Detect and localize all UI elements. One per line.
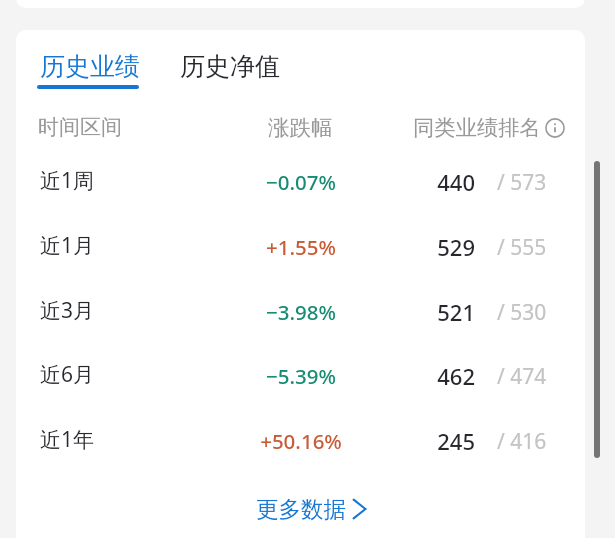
- staticText: 历史业绩: [40, 51, 140, 82]
- button[interactable]: 同类业绩排名: [413, 114, 565, 141]
- button[interactable]: 近1周: [16, 151, 585, 215]
- button[interactable]: 历史净值: [166, 38, 294, 95]
- staticText: / 573: [497, 168, 547, 197]
- button[interactable]: 近6月: [16, 345, 585, 409]
- staticText: 更多数据: [256, 495, 346, 523]
- staticText: 近6月: [40, 360, 95, 389]
- staticText: 历史净值: [180, 51, 280, 82]
- other: About peer performance ranking: [545, 118, 565, 138]
- staticText: 近1月: [40, 231, 95, 260]
- button[interactable]: 近1年: [16, 410, 585, 474]
- staticText: 529: [399, 232, 475, 262]
- staticText: −3.98%: [222, 298, 380, 326]
- staticText: +1.55%: [222, 233, 380, 261]
- staticText: / 555: [497, 233, 547, 262]
- button[interactable]: 历史业绩: [26, 38, 154, 95]
- staticText: 近1周: [40, 166, 95, 195]
- staticText: 521: [399, 297, 475, 327]
- staticText: / 530: [497, 298, 547, 327]
- button[interactable]: 更多数据: [240, 486, 384, 532]
- staticText: / 474: [497, 362, 547, 391]
- staticText: 462: [399, 361, 475, 391]
- staticText: 440: [399, 167, 475, 197]
- staticText: 245: [399, 426, 475, 456]
- staticText: 近3月: [40, 296, 95, 325]
- staticText: −0.07%: [222, 168, 380, 196]
- button[interactable]: 近1月: [16, 216, 585, 280]
- staticText: 近1年: [40, 425, 95, 454]
- staticText: 同类业绩排名: [413, 114, 541, 141]
- button[interactable]: 近3月: [16, 281, 585, 345]
- staticText: −5.39%: [222, 362, 380, 390]
- staticText: / 416: [497, 427, 547, 456]
- staticText: +50.16%: [222, 427, 380, 455]
- staticText: 涨跌幅: [268, 114, 333, 141]
- staticText: 时间区间: [38, 114, 122, 140]
